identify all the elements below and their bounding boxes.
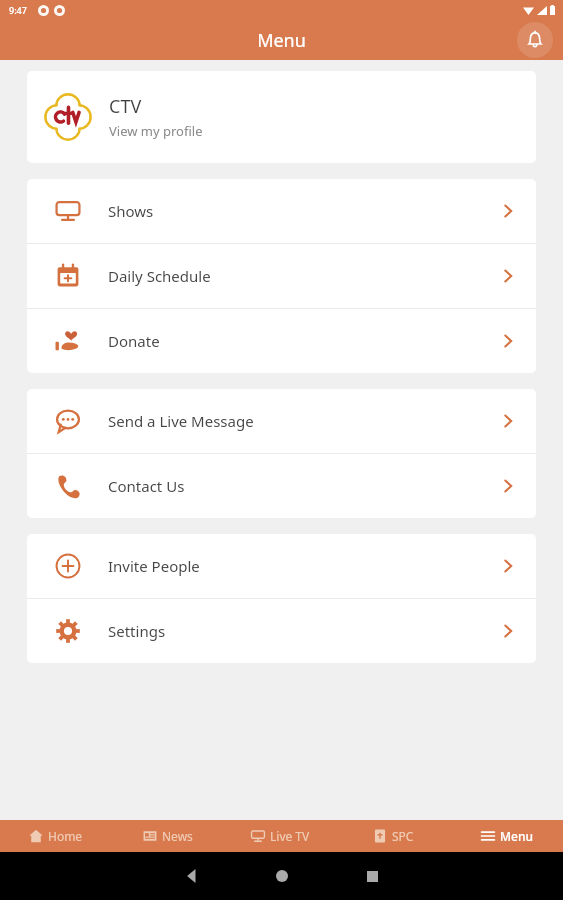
staticText: Shows <box>108 201 480 221</box>
button[interactable]: Home <box>0 820 112 852</box>
staticText: Settings <box>108 621 480 641</box>
button[interactable]: Invite People <box>27 534 536 598</box>
button[interactable]: News <box>112 820 224 852</box>
staticText: Menu <box>500 828 533 844</box>
button[interactable]: Shows <box>27 179 536 243</box>
button[interactable]: Send a Live Message <box>27 389 536 453</box>
button[interactable]: CTV <box>27 71 536 163</box>
staticText: SPC <box>392 828 414 844</box>
staticText: Send a Live Message <box>108 411 480 431</box>
button[interactable]: Contact Us <box>27 454 536 518</box>
staticText: Home <box>48 828 83 844</box>
staticText: 9:47 <box>9 4 27 16</box>
staticText: Live TV <box>270 828 310 844</box>
button[interactable]: Live TV <box>224 820 337 852</box>
staticText: Donate <box>108 331 480 351</box>
button[interactable]: SPC <box>337 820 450 852</box>
staticText: Menu <box>257 28 306 53</box>
button[interactable]: Daily Schedule <box>27 244 536 308</box>
staticText: Invite People <box>108 556 480 576</box>
button[interactable]: Donate <box>27 309 536 373</box>
staticText: News <box>162 828 193 844</box>
staticText: Contact Us <box>108 476 480 496</box>
staticText: Daily Schedule <box>108 266 480 286</box>
button[interactable]: Menu <box>450 820 563 852</box>
button[interactable]: Notifications <box>517 22 553 58</box>
button[interactable]: Settings <box>27 599 536 663</box>
staticText: CTV <box>109 94 142 119</box>
staticText: View my profile <box>109 122 203 140</box>
